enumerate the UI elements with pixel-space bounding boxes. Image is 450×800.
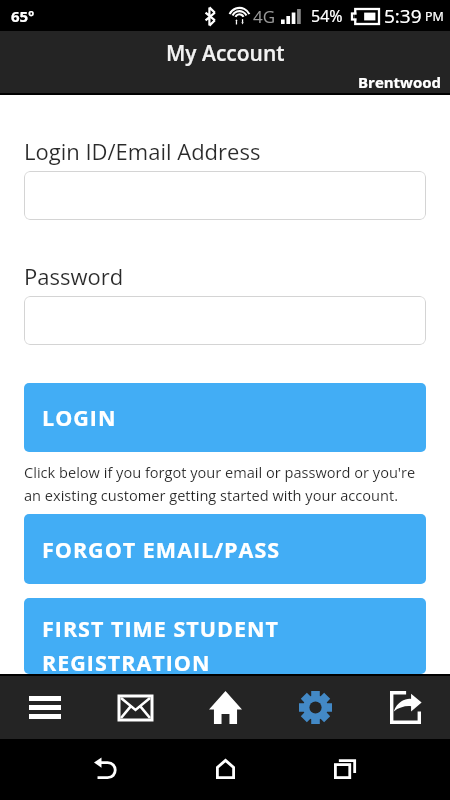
button[interactable]: Home — [180, 676, 270, 739]
staticText: 4G — [253, 5, 276, 28]
button[interactable]: Mail — [90, 676, 180, 739]
staticText: Click below if you forgot your email or … — [24, 462, 416, 506]
button[interactable]: Recents — [315, 744, 375, 794]
button[interactable]: FORGOT EMAIL/PASS — [24, 514, 426, 584]
button[interactable]: Settings — [270, 676, 360, 739]
button[interactable] — [24, 171, 426, 220]
staticText: 54% — [311, 5, 343, 27]
staticText: Login ID/Email Address — [24, 136, 261, 166]
staticText: 5:39 — [384, 3, 422, 29]
staticText: FORGOT EMAIL/PASS — [42, 535, 281, 564]
staticText: 65º — [11, 6, 34, 26]
staticText: Password — [24, 261, 124, 291]
button[interactable]: Menu — [0, 676, 90, 739]
button[interactable]: Home — [195, 744, 255, 794]
button[interactable]: Share — [360, 676, 450, 739]
staticText: Brentwood — [358, 72, 442, 92]
staticText: LOGIN — [42, 403, 117, 432]
button[interactable]: LOGIN — [24, 383, 426, 452]
button[interactable] — [24, 296, 426, 345]
staticText: FIRST TIME STUDENT REGISTRATION — [42, 614, 414, 674]
staticText: My Account — [166, 39, 285, 68]
staticText: PM — [425, 8, 444, 25]
button[interactable]: FIRST TIME STUDENT REGISTRATION — [24, 598, 426, 674]
button[interactable]: Back — [75, 744, 135, 794]
